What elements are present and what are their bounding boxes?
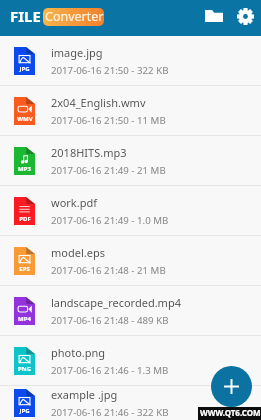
- staticText: JPG: [19, 65, 30, 73]
- staticText: image.jpg: [51, 45, 103, 60]
- button[interactable]: Add file: [211, 366, 252, 407]
- staticText: EPS: [19, 265, 30, 273]
- staticText: 2017-06-16 21:49 - 1.0 MB: [51, 214, 169, 227]
- button[interactable]: PDF: [0, 186, 261, 235]
- staticText: FILE: [10, 6, 41, 26]
- staticText: 2018HITS.mp3: [51, 145, 127, 160]
- staticText: JPG: [19, 407, 30, 415]
- staticText: 2017-06-16 21:50 - 11 MB: [51, 114, 166, 127]
- staticText: 2017-06-16 21:48 - 489 KB: [51, 314, 169, 327]
- button[interactable]: JPG: [0, 386, 261, 420]
- staticText: WMV: [17, 115, 33, 123]
- button[interactable]: JPG: [0, 36, 261, 85]
- staticText: MP4: [18, 315, 31, 323]
- button[interactable]: Settings: [230, 0, 260, 34]
- staticText: 2017-06-16 21:49 - 21 MB: [51, 164, 166, 177]
- button[interactable]: MP3: [0, 136, 261, 185]
- staticText: PNG: [18, 365, 31, 373]
- button[interactable]: MP4: [0, 286, 261, 335]
- button[interactable]: PNG: [0, 336, 261, 385]
- staticText: WWW.QT6.COM: [200, 407, 261, 418]
- staticText: Converter: [45, 8, 104, 25]
- staticText: MP3: [18, 165, 31, 173]
- staticText: 2x04_English.wmv: [51, 95, 146, 110]
- button[interactable]: WMV: [0, 86, 261, 135]
- button[interactable]: Browse folders: [198, 0, 230, 34]
- staticText: landscape_recorded.mp4: [51, 295, 181, 310]
- staticText: 2017-06-16 21:50 - 322 KB: [51, 64, 169, 77]
- staticText: example .jpg: [51, 387, 118, 402]
- staticText: model.eps: [51, 245, 105, 260]
- staticText: 2017-06-16 21:46 - 1.3 MB: [51, 364, 169, 377]
- staticText: PDF: [19, 215, 31, 223]
- staticText: 2017-06-16 21:46 - 322 KB: [51, 406, 169, 419]
- staticText: work.pdf: [51, 195, 97, 210]
- staticText: 2017-06-16 21:48 - 21 MB: [51, 264, 166, 277]
- button[interactable]: EPS: [0, 236, 261, 285]
- staticText: photo.png: [51, 345, 106, 360]
